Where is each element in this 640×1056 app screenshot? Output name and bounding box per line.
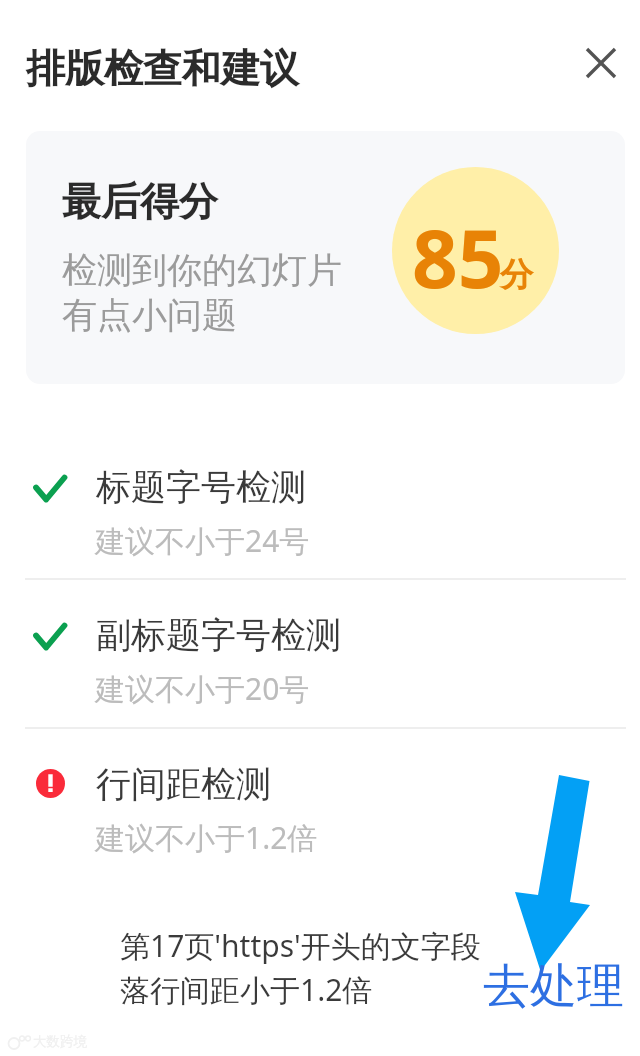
staticText: 排版检查和建议 [26,44,299,93]
button[interactable]: 副标题字号检测 [0,600,640,726]
staticText: 建议不小于24号 [95,520,310,561]
staticText: 检测到你的幻灯片 有点小问题 [62,248,342,338]
button[interactable]: 去处理 [483,957,624,1016]
staticText: 第17页'https'开头的文字段 落行间距小于1.2倍 [120,925,481,1009]
button[interactable]: 最后得分 [26,131,625,384]
staticText: 85 [412,202,504,311]
staticText: 建议不小于1.2倍 [95,817,318,858]
staticText: 分 [500,254,533,296]
staticText: 建议不小于20号 [95,668,310,709]
button[interactable]: 行间距检测 [0,749,640,875]
button[interactable]: 标题字号检测 [0,452,640,578]
staticText: 去处理 [483,957,624,1016]
staticText: 副标题字号检测 [96,613,341,657]
button[interactable]: 排版检查和建议 [26,44,299,93]
staticText: 行间距检测 [96,762,271,806]
staticText: 最后得分 [62,177,218,226]
button[interactable]: Close [573,35,629,91]
staticText: 大数跨境 [33,1033,87,1050]
staticText: 标题字号检测 [96,465,306,509]
